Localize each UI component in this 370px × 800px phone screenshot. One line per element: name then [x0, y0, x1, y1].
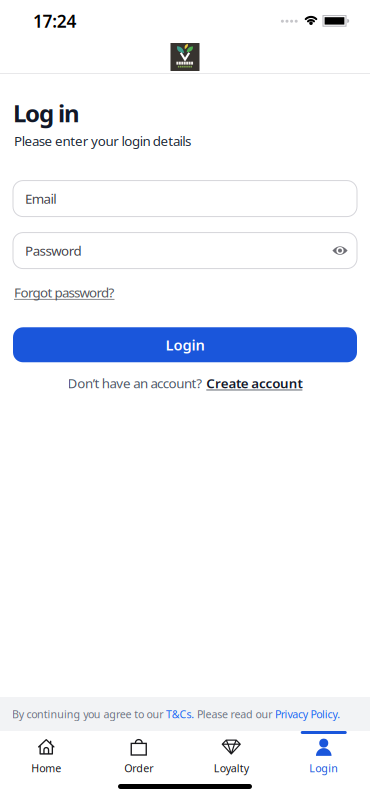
staticText: Email [25, 190, 56, 207]
staticText: Login [165, 335, 204, 354]
staticText: Loyalty [214, 761, 249, 775]
button[interactable]: Order [92, 731, 185, 775]
staticText: Password [25, 242, 82, 259]
button[interactable]: Show password [332, 245, 357, 257]
button[interactable]: T&Cs. [166, 707, 194, 721]
staticText: Privacy Policy. [275, 707, 340, 721]
staticText: Order [124, 761, 153, 775]
staticText: Please enter your login details [14, 132, 191, 150]
button[interactable]: Loyalty [185, 731, 277, 775]
button[interactable]: Forgot password? [14, 284, 114, 301]
button[interactable]: Home [0, 731, 92, 775]
button[interactable]: Privacy Policy. [275, 707, 340, 721]
button[interactable]: Login [277, 731, 370, 775]
staticText: Home [31, 761, 61, 775]
staticText: By continuing you agree to our [12, 707, 166, 721]
staticText: Don’t have an account? [68, 374, 202, 392]
staticText: Forgot password? [14, 284, 114, 301]
staticText: Login [309, 761, 338, 775]
button[interactable]: Create account [206, 374, 302, 392]
button[interactable]: Login [13, 327, 357, 362]
staticText: T&Cs. [166, 707, 194, 721]
staticText: Create account [206, 374, 302, 392]
staticText: Please read our [194, 707, 275, 721]
staticText: Log in [13, 97, 80, 129]
staticText: 17:24 [33, 9, 76, 32]
